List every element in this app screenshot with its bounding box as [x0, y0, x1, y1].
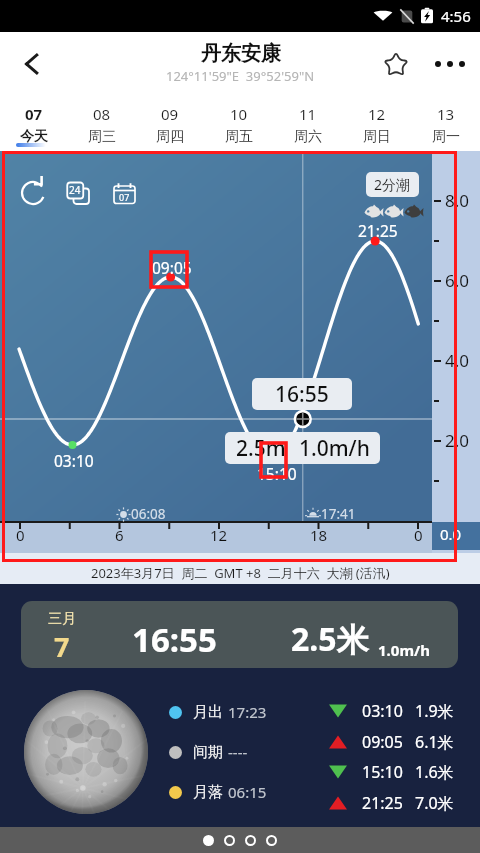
staticText: 月出 — [193, 703, 223, 722]
staticText: 21:25 — [358, 220, 398, 241]
button[interactable]: 21:25 — [328, 792, 454, 814]
staticText: 10 — [230, 104, 248, 124]
button[interactable]: 月落 — [169, 781, 267, 803]
button[interactable]: 16:55 — [252, 378, 352, 410]
staticText: 12 — [210, 525, 228, 545]
staticText: 16:55 — [275, 380, 329, 409]
staticText: 11 — [299, 104, 317, 124]
staticText: 月落 — [193, 783, 223, 802]
button[interactable]: 15:10 — [328, 761, 454, 783]
staticText: 15:10 — [257, 463, 297, 484]
staticText: 2023年3月7日 周二 GMT +8 二月十六 大潮 (活汛) — [91, 564, 390, 582]
button[interactable]: Page 3 — [245, 835, 256, 846]
staticText: 08 — [93, 104, 111, 124]
staticText: 2分潮 — [374, 175, 411, 194]
staticText: 1.9米 — [415, 700, 454, 722]
staticText: 4:56 — [441, 6, 471, 26]
staticText: 2.5米 — [291, 617, 369, 661]
button[interactable]: Back — [4, 36, 60, 92]
button[interactable]: Calendar — [106, 175, 142, 211]
staticText: 2.5m — [236, 434, 286, 463]
button[interactable]: 08 — [68, 95, 136, 151]
staticText: 1.6米 — [415, 761, 454, 783]
staticText: 09 — [161, 104, 179, 124]
staticText: 17:41 — [321, 505, 356, 523]
staticText: 09:05 — [152, 257, 192, 278]
staticText: 03:10 — [54, 450, 94, 471]
button[interactable]: 09 — [136, 95, 204, 151]
staticText: 2.0 — [445, 429, 470, 452]
staticText: 1.0m/h — [378, 640, 430, 660]
staticText: 丹东安康 — [201, 41, 281, 66]
staticText: 07 — [119, 191, 130, 203]
staticText: 18 — [310, 525, 328, 545]
staticText: 6.1米 — [415, 731, 454, 753]
staticText: 06:08 — [131, 505, 166, 523]
button[interactable]: Refresh — [16, 176, 50, 210]
staticText: 15:10 — [362, 761, 403, 783]
button[interactable]: More options — [424, 38, 476, 90]
button[interactable]: Favorite — [368, 36, 424, 92]
staticText: 16:55 — [132, 617, 217, 662]
button[interactable]: 2分潮 — [366, 172, 419, 197]
staticText: 1.0m/h — [299, 434, 370, 463]
button[interactable]: 07 — [0, 95, 68, 151]
staticText: 0 — [16, 525, 25, 545]
staticText: 06:15 — [228, 782, 267, 802]
staticText: 0 — [414, 525, 423, 545]
staticText: 03:10 — [362, 700, 403, 722]
staticText: 0.0 — [440, 524, 462, 544]
button[interactable]: 12 — [342, 95, 411, 151]
button[interactable]: 24 hour view — [60, 175, 96, 211]
button[interactable]: Page 1 — [203, 835, 214, 846]
button[interactable]: 月出 — [169, 701, 267, 723]
staticText: 17:23 — [228, 702, 267, 722]
staticText: 09:05 — [362, 731, 403, 753]
staticText: 周六 — [294, 128, 322, 146]
staticText: 7.0米 — [415, 792, 454, 814]
button[interactable]: Page 2 — [224, 835, 235, 846]
button[interactable]: 09:05 — [328, 731, 454, 753]
staticText: ---- — [228, 742, 248, 762]
button[interactable]: 间期 — [169, 741, 248, 763]
button[interactable]: 10 — [204, 95, 273, 151]
staticText: 周一 — [432, 128, 460, 146]
button[interactable]: 三月 — [21, 601, 458, 668]
staticText: 07 — [25, 104, 43, 124]
staticText: 4.0 — [445, 349, 470, 372]
staticText: 13 — [437, 104, 455, 124]
staticText: 间期 — [193, 743, 223, 762]
button[interactable]: 11 — [273, 95, 342, 151]
staticText: 12 — [368, 104, 386, 124]
button[interactable]: Page 4 — [266, 835, 277, 846]
staticText: 三月 — [48, 610, 76, 628]
staticText: 周五 — [225, 128, 253, 146]
button[interactable]: 03:10 — [328, 700, 454, 722]
staticText: 24 — [69, 183, 81, 197]
button[interactable]: 2.5m — [225, 432, 380, 464]
staticText: 8.0 — [445, 189, 470, 212]
staticText: 6.0 — [445, 269, 470, 292]
button[interactable]: 13 — [411, 95, 480, 151]
staticText: 6 — [115, 525, 124, 545]
staticText: 周四 — [156, 128, 184, 146]
staticText: 周日 — [363, 128, 391, 146]
staticText: 21:25 — [362, 792, 403, 814]
staticText: 今天 — [20, 128, 48, 146]
staticText: 周三 — [88, 128, 116, 146]
staticText: 7 — [54, 628, 70, 665]
staticText: 124°11'59"E 39°52'59"N — [166, 67, 315, 85]
